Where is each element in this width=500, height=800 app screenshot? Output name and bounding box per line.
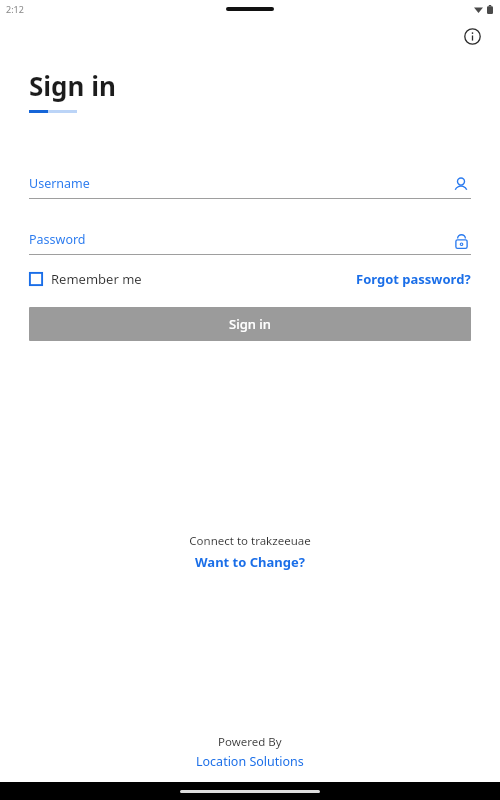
staticText: Sign in xyxy=(229,315,271,333)
staticText: Forgot password? xyxy=(356,270,471,288)
staticText: Sign in xyxy=(29,68,116,103)
staticText: Connect to trakzeeuae xyxy=(189,533,311,549)
button[interactable]: Sign in xyxy=(29,307,471,341)
staticText: Powered By xyxy=(218,734,282,750)
button[interactable]: Forgot password? xyxy=(356,270,471,288)
staticText: Remember me xyxy=(51,270,142,288)
staticText: Want to Change? xyxy=(195,553,305,571)
button[interactable]: Remember me xyxy=(29,270,142,288)
button[interactable]: Information xyxy=(458,22,486,50)
button[interactable]: Want to Change? xyxy=(195,553,305,571)
staticText: Username xyxy=(29,175,90,192)
button[interactable]: Location Solutions xyxy=(196,753,304,770)
staticText: Password xyxy=(29,231,86,248)
staticText: Location Solutions xyxy=(196,753,304,770)
staticText: 2:12 xyxy=(6,3,24,15)
